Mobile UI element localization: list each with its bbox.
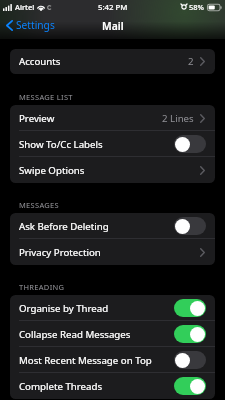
button[interactable]: Ask Before Deleting: [10, 213, 215, 239]
staticText: Privacy Protection: [19, 246, 101, 259]
staticText: Most Recent Message on Top: [19, 354, 152, 367]
staticText: MESSAGES: [19, 200, 59, 209]
button[interactable]: Organise by Thread: [10, 295, 215, 321]
button[interactable]: Show To/Cc Labels: [10, 131, 215, 157]
button[interactable]: Swipe Options: [10, 157, 215, 183]
staticText: Settings: [16, 18, 55, 32]
staticText: Complete Threads: [19, 380, 103, 393]
staticText: 5:42 PM: [98, 2, 128, 13]
button[interactable]: Settings: [0, 16, 61, 34]
staticText: 58%: [189, 2, 204, 12]
button[interactable]: Switch off: [174, 135, 206, 153]
button[interactable]: Privacy Protection: [10, 239, 215, 265]
staticText: 2: [188, 55, 194, 68]
staticText: 2 Lines: [162, 112, 194, 125]
button[interactable]: Switch on: [174, 377, 206, 395]
button[interactable]: Accounts: [10, 49, 215, 74]
button[interactable]: Switch off: [174, 351, 206, 369]
staticText: Swipe Options: [19, 164, 85, 177]
button[interactable]: Switch off: [174, 217, 206, 235]
staticText: Collapse Read Messages: [19, 328, 131, 341]
staticText: Mail: [102, 19, 124, 33]
button[interactable]: Complete Threads: [10, 373, 215, 399]
staticText: Airtel: [15, 2, 35, 12]
staticText: THREADING: [19, 282, 65, 291]
staticText: Preview: [19, 112, 55, 125]
button[interactable]: Preview: [10, 105, 215, 131]
staticText: MESSAGE LIST: [19, 92, 73, 101]
staticText: Ask Before Deleting: [19, 220, 109, 233]
button[interactable]: Switch on: [174, 299, 206, 317]
staticText: Show To/Cc Labels: [19, 138, 103, 151]
staticText: Organise by Thread: [19, 302, 109, 315]
button[interactable]: Switch on: [174, 325, 206, 343]
button[interactable]: Collapse Read Messages: [10, 321, 215, 347]
staticText: Accounts: [19, 55, 61, 68]
button[interactable]: Most Recent Message on Top: [10, 347, 215, 373]
